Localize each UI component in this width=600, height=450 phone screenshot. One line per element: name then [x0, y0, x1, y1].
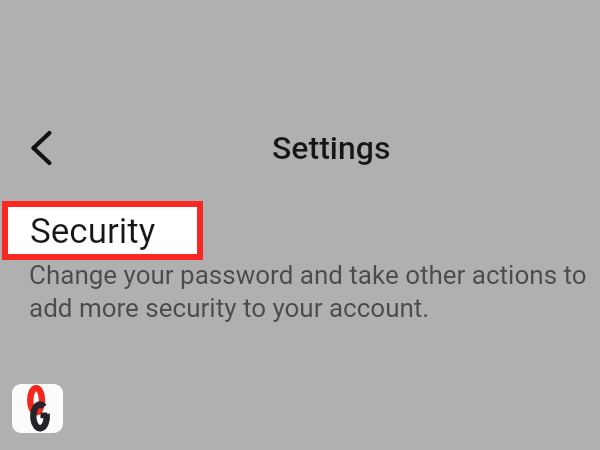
button[interactable]: Security	[8, 207, 197, 254]
staticText: Settings	[272, 129, 391, 167]
staticText: Change your password and take other acti…	[29, 260, 600, 323]
staticText: Security	[30, 211, 156, 252]
button[interactable]: Back	[19, 125, 65, 171]
